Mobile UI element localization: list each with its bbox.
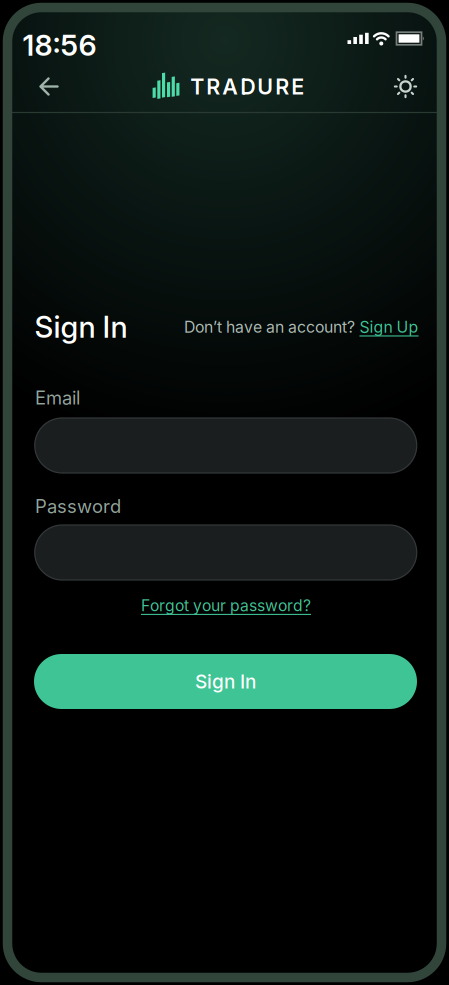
staticText: Password bbox=[35, 495, 121, 517]
button[interactable]: Back bbox=[29, 68, 69, 104]
staticText: 18:56 bbox=[22, 28, 96, 63]
staticText: Forgot your password? bbox=[141, 596, 311, 615]
button[interactable]: Sign Up bbox=[359, 317, 418, 336]
button[interactable]: Password bbox=[35, 525, 417, 580]
staticText: Sign Up bbox=[359, 317, 418, 336]
staticText: T R A D U R E bbox=[190, 74, 304, 100]
staticText: Don’t have an account? bbox=[184, 317, 355, 336]
staticText: Email bbox=[35, 387, 80, 409]
button[interactable]: Forgot your password? bbox=[141, 596, 311, 615]
button[interactable]: Sign In bbox=[34, 654, 417, 709]
button[interactable]: Switch theme bbox=[386, 68, 424, 104]
staticText: Sign In bbox=[195, 670, 256, 693]
button[interactable]: Email bbox=[35, 418, 417, 473]
staticText: Sign In bbox=[34, 309, 127, 345]
